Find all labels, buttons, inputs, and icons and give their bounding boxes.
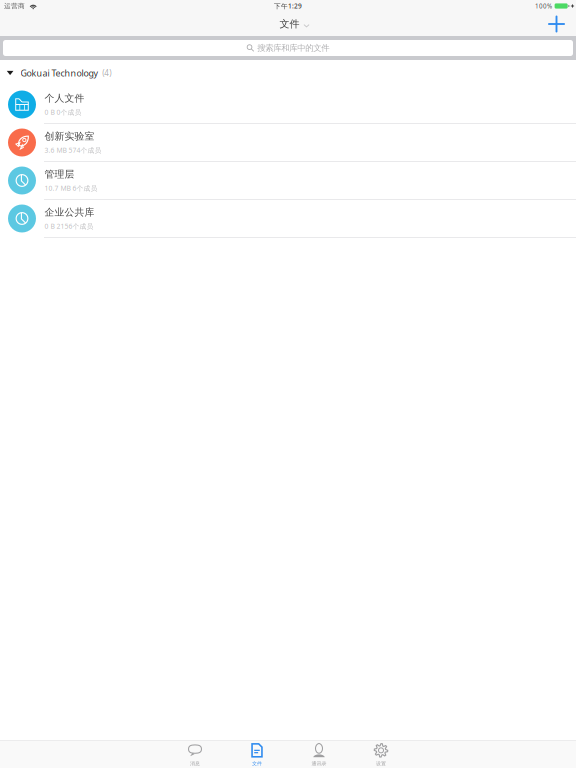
staticText: 3.6 MB 574个成员 [44, 145, 101, 155]
staticText: 消息 [190, 760, 200, 767]
staticText: 运营商 [4, 2, 25, 10]
staticText: 个人文件 [44, 92, 84, 104]
staticText: 创新实验室 [44, 130, 94, 142]
staticText: 0 B 2156个成员 [44, 221, 93, 231]
button[interactable]: 消息 [164, 740, 226, 768]
staticText: 10.7 MB 6个成员 [44, 183, 97, 193]
staticText: 0 B 0个成员 [44, 107, 81, 117]
button[interactable]: 个人文件 [0, 86, 576, 124]
button[interactable]: 文件 [226, 740, 288, 768]
staticText: 通讯录 [311, 760, 326, 767]
button[interactable]: 设置 [350, 740, 412, 768]
button[interactable]: Gokuai Technology [0, 60, 576, 86]
button[interactable]: 文件 [266, 18, 309, 30]
staticText: 100% [535, 2, 552, 10]
button[interactable]: 创新实验室 [0, 124, 576, 162]
staticText: 文件 [279, 18, 299, 30]
button[interactable]: 企业公共库 [0, 200, 576, 238]
staticText: 下午1:29 [274, 1, 302, 10]
staticText: 管理层 [44, 168, 74, 180]
staticText: (4) [102, 68, 111, 78]
button[interactable]: 搜索库和库中的文件 [247, 40, 329, 56]
staticText: 搜索库和库中的文件 [257, 43, 329, 53]
staticText: 设置 [376, 760, 386, 767]
staticText: 文件 [252, 760, 262, 767]
button[interactable]: New item [541, 12, 572, 35]
button[interactable]: 通讯录 [288, 740, 350, 768]
staticText: Gokuai Technology [21, 67, 99, 79]
button[interactable]: 管理层 [0, 162, 576, 200]
staticText: 企业公共库 [44, 206, 94, 218]
